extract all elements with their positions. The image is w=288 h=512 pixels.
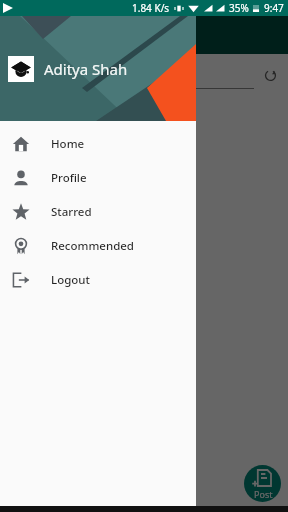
staticText: Recommended <box>51 238 134 254</box>
button[interactable]: Post <box>244 465 281 502</box>
button[interactable]: Starred <box>0 195 196 229</box>
button[interactable]: Recommended <box>0 229 196 263</box>
staticText: 9:47 <box>264 1 284 15</box>
staticText: Post <box>254 488 273 500</box>
button[interactable]: Refresh <box>264 69 277 82</box>
staticText: Profile <box>51 170 87 186</box>
staticText: Home <box>51 136 85 152</box>
staticText: 35% <box>229 1 249 15</box>
staticText: Starred <box>51 204 92 220</box>
staticText: Aditya Shah <box>44 59 128 79</box>
button[interactable]: Logout <box>0 263 196 297</box>
button[interactable]: Profile <box>0 161 196 195</box>
button[interactable]: Home <box>0 127 196 161</box>
staticText: Consulta: <box>16 67 74 85</box>
staticText: Logout <box>51 272 90 288</box>
staticText: 1.84 K/s <box>132 1 170 15</box>
